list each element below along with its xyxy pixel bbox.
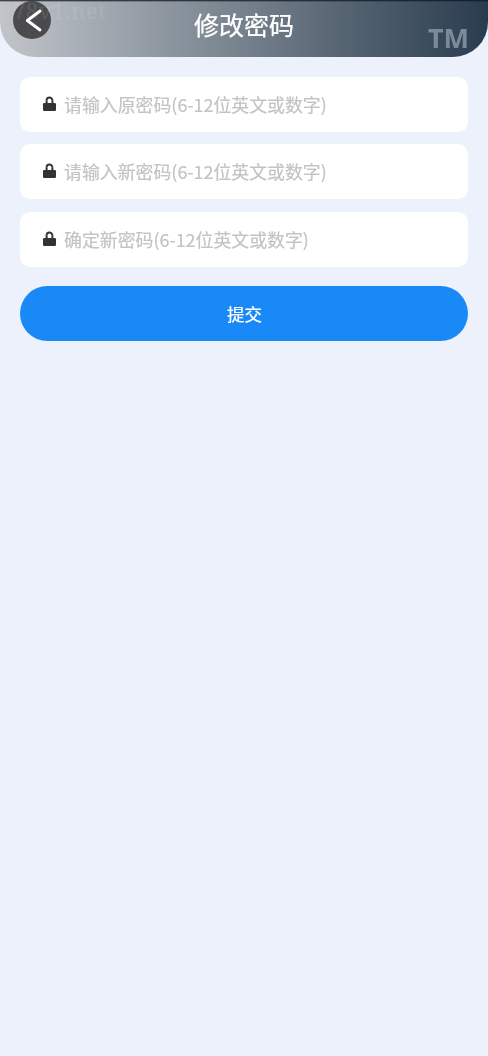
staticText: TM [428, 19, 470, 56]
staticText: 修改密码 [194, 6, 295, 42]
button[interactable]: Back [13, 1, 51, 39]
staticText: 提交 [227, 301, 262, 326]
staticText: 请输入新密码(6-12位英文或数字) [64, 158, 327, 184]
button[interactable]: 请输入新密码(6-12位英文或数字) [20, 144, 468, 199]
button[interactable]: 确定新密码(6-12位英文或数字) [20, 212, 468, 267]
staticText: 请输入原密码(6-12位英文或数字) [64, 91, 327, 117]
button[interactable]: 请输入原密码(6-12位英文或数字) [20, 77, 468, 132]
button[interactable]: 提交 [20, 286, 468, 341]
staticText: 确定新密码(6-12位英文或数字) [64, 226, 309, 252]
staticText: 78v1.net [13, 0, 107, 25]
